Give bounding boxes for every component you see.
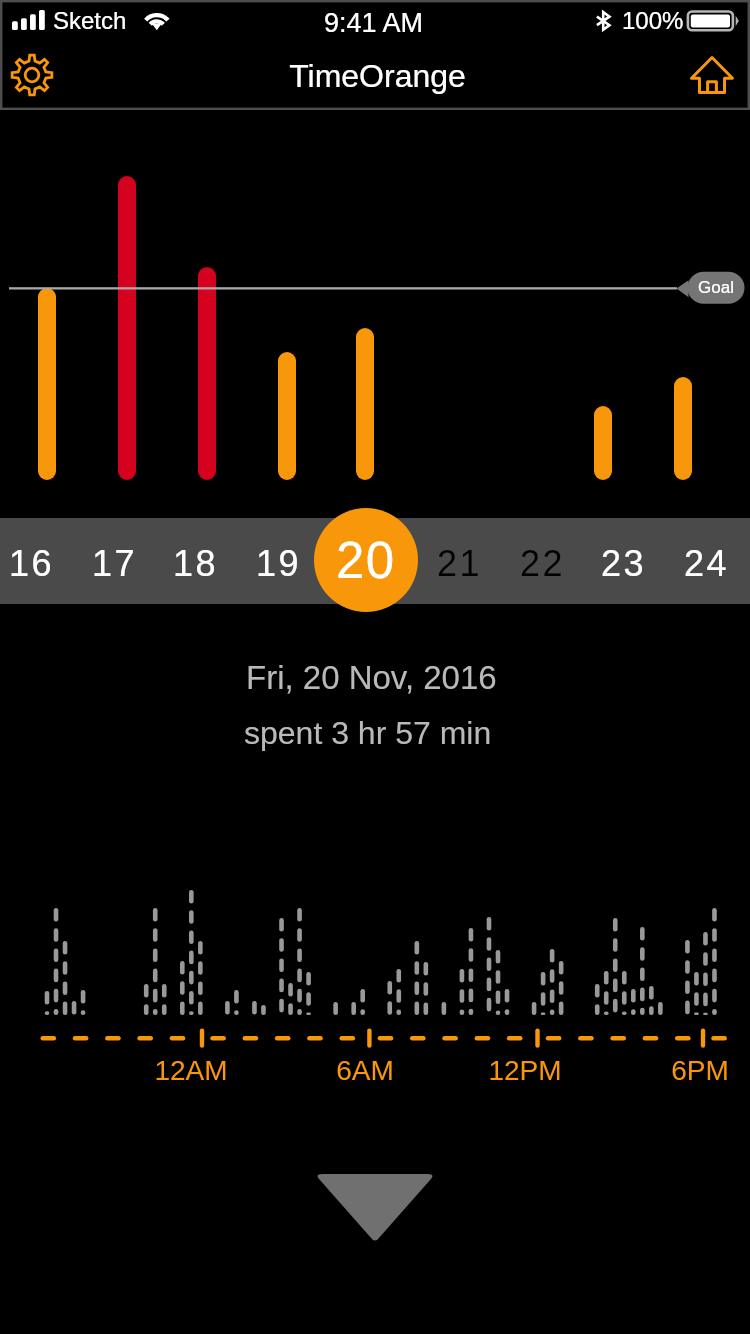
staticText: 100% [622,7,684,34]
button[interactable]: Home [680,44,744,105]
staticText: 21 [437,543,482,583]
button[interactable]: 21 [418,520,500,606]
staticText: Fri, 20 Nov, 2016 [246,659,497,696]
staticText: 22 [520,543,565,583]
staticText: 6PM [671,1055,729,1086]
button[interactable]: 18 [154,520,236,606]
staticText: 16 [9,543,54,583]
staticText: 9:41 AM [324,8,424,38]
staticText: 6AM [336,1055,394,1086]
staticText: 19 [256,543,301,583]
staticText: 23 [601,543,646,583]
button[interactable]: 22 [501,520,583,606]
staticText: 17 [92,543,137,583]
button[interactable]: 19 [237,520,319,606]
staticText: spent 3 hr 57 min [244,715,492,751]
button[interactable]: 24 [665,520,747,606]
button[interactable]: 16 [0,520,72,606]
button[interactable]: Show more [315,1174,435,1241]
staticText: 18 [173,543,218,583]
button[interactable]: 23 [582,520,664,606]
button[interactable]: 17 [73,520,155,606]
staticText: 20 [336,532,396,589]
staticText: Goal [698,278,734,297]
staticText: 12PM [488,1055,562,1086]
button[interactable]: Settings [0,44,64,106]
staticText: 12AM [154,1055,228,1086]
button[interactable]: 20 [314,508,418,612]
staticText: TimeOrange [289,58,466,94]
staticText: 24 [684,543,729,583]
staticText: Sketch [53,7,127,34]
